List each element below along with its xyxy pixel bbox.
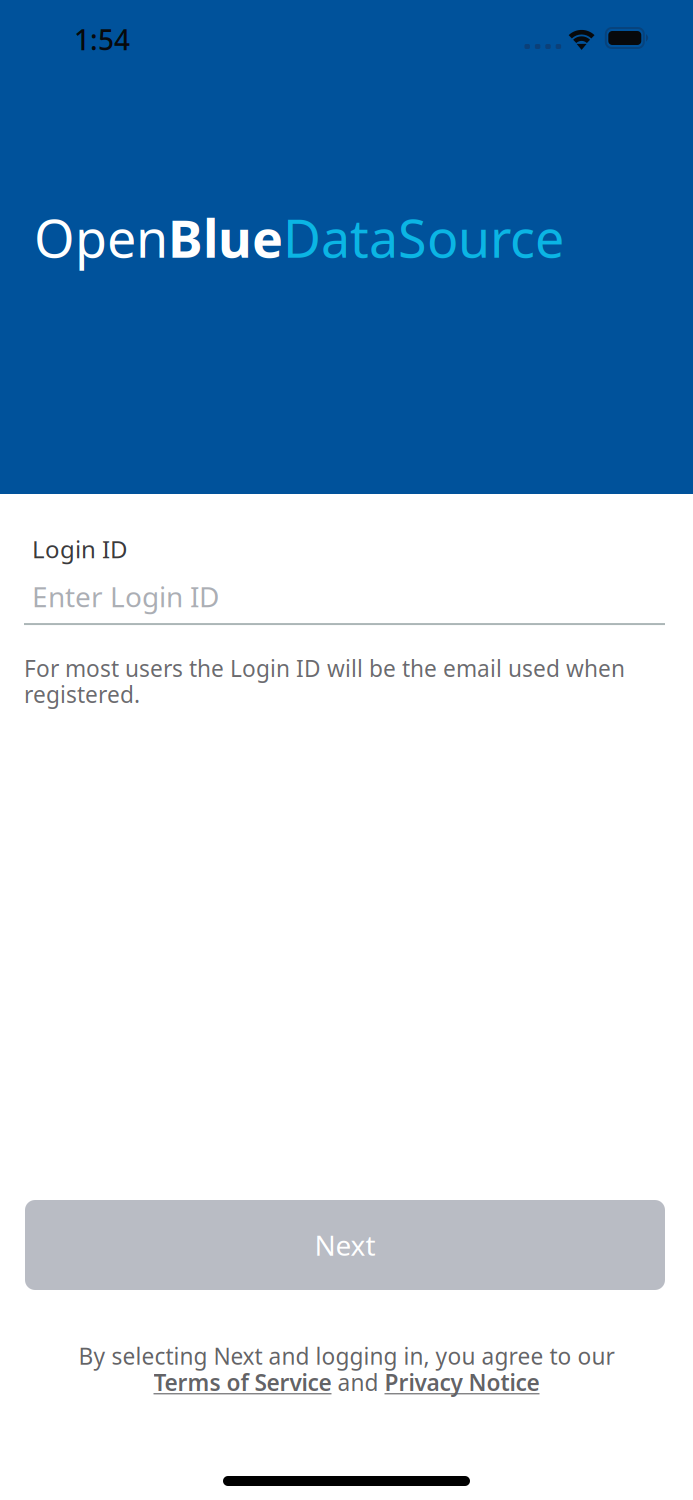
staticText: and (331, 1367, 384, 1397)
staticText: Open (34, 203, 168, 272)
staticText: By selecting Next and logging in, you ag… (78, 1341, 614, 1371)
staticText: For most users the Login ID will be the … (24, 653, 625, 709)
staticText: Login ID (32, 533, 128, 565)
button[interactable]: Next (25, 1200, 665, 1290)
staticText: Terms of Service (153, 1367, 331, 1397)
staticText: Next (314, 1226, 375, 1264)
staticText: DataSource (283, 203, 564, 272)
staticText: Enter Login ID (32, 578, 219, 615)
staticText: 1:54 (74, 21, 130, 58)
staticText: Privacy Notice (384, 1367, 539, 1397)
staticText: Blue (168, 203, 283, 272)
